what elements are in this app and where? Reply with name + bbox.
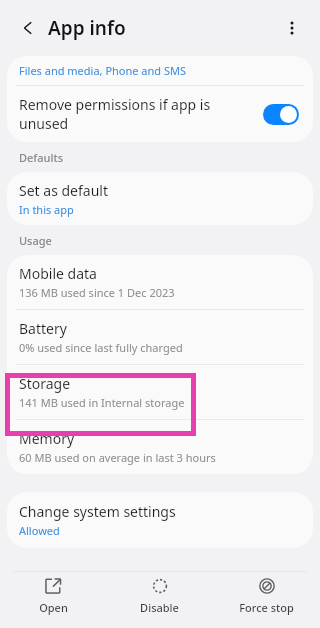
staticText: 0% used since last fully charged <box>19 340 183 355</box>
staticText: Battery <box>19 319 67 338</box>
staticText: Mobile data <box>19 264 97 283</box>
staticText: Defaults <box>19 150 63 165</box>
button[interactable]: Disable <box>106 578 213 615</box>
staticText: In this app <box>19 202 74 217</box>
button[interactable]: Force stop <box>213 578 320 615</box>
staticText: Set as default <box>19 181 108 200</box>
staticText: Usage <box>19 233 52 248</box>
staticText: Files and media, Phone and SMS <box>19 63 187 78</box>
staticText: Change system settings <box>19 502 176 521</box>
button[interactable]: Files and media, Phone and SMS <box>7 56 313 85</box>
staticText: 141 MB used in Internal storage <box>19 395 185 410</box>
staticText: App info <box>48 15 126 41</box>
staticText: 60 MB used on average in last 3 hours <box>19 450 216 465</box>
button[interactable]: Battery <box>7 310 313 364</box>
button[interactable]: Change system settings <box>7 492 313 548</box>
button[interactable]: Mobile data <box>7 255 313 309</box>
button[interactable]: Remove permissions if app is unused <box>7 86 313 142</box>
staticText: Open <box>39 600 68 615</box>
button[interactable]: Back <box>8 8 48 48</box>
button[interactable]: Open <box>0 578 106 615</box>
button[interactable]: Storage <box>7 365 313 419</box>
staticText: Remove permissions if app is unused <box>19 95 255 133</box>
button[interactable]: More options <box>272 8 312 48</box>
button[interactable]: Memory <box>7 420 313 474</box>
staticText: 136 MB used since 1 Dec 2023 <box>19 285 175 300</box>
button[interactable]: Set as default <box>7 172 313 225</box>
staticText: Storage <box>19 374 71 393</box>
staticText: Disable <box>140 600 179 615</box>
staticText: Allowed <box>19 523 60 538</box>
staticText: Force stop <box>239 600 294 615</box>
button[interactable]: Remove permissions toggle <box>263 104 299 125</box>
staticText: Memory <box>19 429 75 448</box>
